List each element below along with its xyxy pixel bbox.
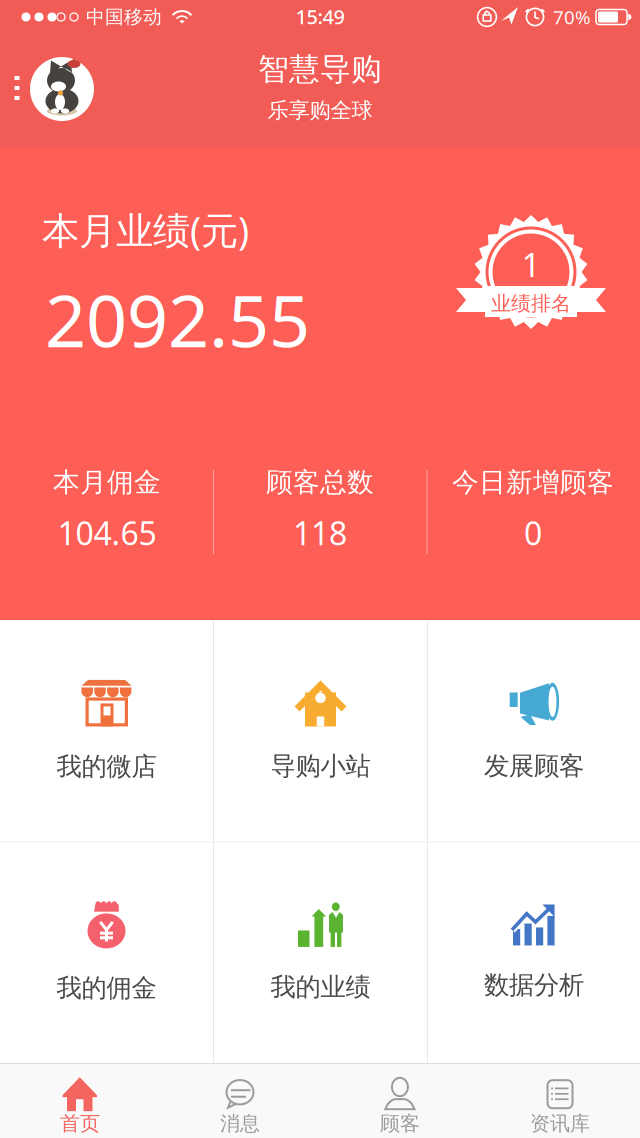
button[interactable]: 我的佣金	[0, 842, 213, 1062]
staticText: 我的微店	[56, 751, 156, 782]
button[interactable]: 数据分析	[428, 842, 640, 1062]
button[interactable]: 导购小站	[214, 620, 427, 841]
staticText: 本月业绩(元)	[42, 205, 249, 255]
staticText: 顾客总数	[266, 466, 374, 499]
staticText: 118	[293, 512, 347, 554]
staticText: 今日新增顾客	[452, 466, 614, 499]
button[interactable]: 我的业绩	[214, 842, 427, 1062]
button[interactable]: 我的微店	[0, 620, 213, 841]
staticText: 智慧导购	[258, 51, 382, 88]
staticText: 顾客	[380, 1111, 420, 1136]
staticText: 70%	[553, 5, 591, 29]
staticText: 乐享购全球	[267, 97, 372, 123]
button[interactable]: 消息	[160, 1062, 320, 1138]
button[interactable]: 头像	[30, 57, 94, 121]
staticText: 104.65	[57, 512, 156, 554]
staticText: 我的业绩	[270, 971, 370, 1002]
staticText: 业绩排名	[491, 291, 571, 316]
staticText: 发展顾客	[484, 750, 584, 781]
staticText: 数据分析	[484, 969, 584, 1000]
staticText: 本月佣金	[53, 466, 161, 499]
button[interactable]: 首页	[0, 1062, 160, 1138]
staticText: 导购小站	[270, 750, 370, 781]
staticText: 我的佣金	[56, 972, 156, 1003]
button[interactable]: 发展顾客	[428, 620, 640, 841]
button[interactable]: 资讯库	[480, 1062, 640, 1138]
staticText: 2092.55	[45, 272, 310, 367]
staticText: 中国移动	[86, 5, 162, 28]
staticText: 资讯库	[530, 1111, 590, 1136]
staticText: 消息	[220, 1111, 260, 1136]
staticText: 首页	[60, 1111, 100, 1136]
button[interactable]: 菜单	[4, 68, 30, 108]
staticText: 15:49	[295, 3, 344, 30]
button[interactable]: 顾客	[320, 1062, 480, 1138]
staticText: 1	[521, 242, 540, 286]
staticText: 0	[524, 512, 542, 554]
